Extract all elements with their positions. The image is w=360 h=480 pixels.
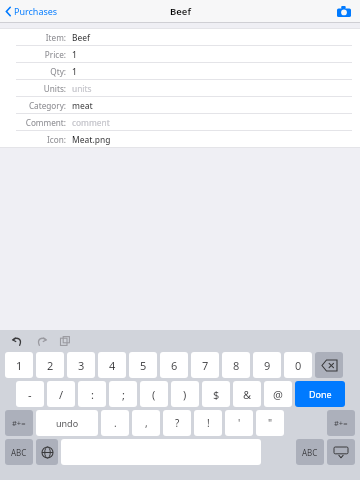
staticText: units: [72, 83, 92, 94]
staticText: 4: [109, 358, 116, 373]
staticText: ABC: [302, 447, 318, 458]
button[interactable]: Redo: [32, 332, 50, 350]
staticText: /: [59, 387, 64, 402]
staticText: Qty:: [16, 66, 66, 77]
staticText: &: [243, 387, 252, 402]
staticText: ': [238, 416, 241, 430]
staticText: 6: [171, 358, 178, 373]
button[interactable]: #+=: [327, 410, 355, 436]
button[interactable]: 7: [191, 352, 219, 378]
button[interactable]: key: [315, 352, 343, 378]
staticText: Price:: [16, 49, 66, 60]
button[interactable]: Camera: [336, 3, 352, 19]
button[interactable]: !: [194, 410, 222, 436]
button[interactable]: 4: [98, 352, 126, 378]
button[interactable]: 2: [36, 352, 64, 378]
button[interactable]: ABC: [296, 439, 324, 465]
staticText: 5: [140, 358, 147, 373]
staticText: ;: [122, 387, 125, 402]
staticText: Icon:: [16, 134, 66, 145]
button[interactable]: 1: [5, 352, 33, 378]
staticText: 1: [72, 49, 77, 60]
staticText: Comment:: [16, 117, 66, 128]
button[interactable]: 6: [160, 352, 188, 378]
button[interactable]: :: [78, 381, 106, 407]
staticText: comment: [72, 117, 110, 128]
button[interactable]: @: [264, 381, 292, 407]
button[interactable]: key: [327, 439, 355, 465]
staticText: !: [207, 416, 210, 430]
staticText: 7: [202, 358, 209, 373]
button[interactable]: ,: [132, 410, 160, 436]
staticText: ?: [175, 416, 180, 430]
button[interactable]: 9: [253, 352, 281, 378]
button[interactable]: 3: [67, 352, 95, 378]
button[interactable]: undo: [36, 410, 98, 436]
button[interactable]: 8: [222, 352, 250, 378]
button[interactable]: (: [140, 381, 168, 407]
staticText: -: [28, 387, 32, 402]
staticText: Category:: [16, 100, 66, 111]
staticText: 9: [264, 358, 271, 373]
button[interactable]: ": [256, 410, 284, 436]
staticText: meat: [72, 100, 93, 111]
button[interactable]: Undo: [8, 332, 26, 350]
staticText: ): [183, 387, 187, 402]
staticText: 0: [295, 358, 302, 373]
staticText: 1: [16, 358, 23, 373]
button[interactable]: .: [101, 410, 129, 436]
button[interactable]: #+=: [5, 410, 33, 436]
button[interactable]: $: [202, 381, 230, 407]
button[interactable]: 5: [129, 352, 157, 378]
staticText: ": [268, 416, 273, 430]
staticText: Beef: [72, 32, 91, 43]
button[interactable]: ?: [163, 410, 191, 436]
staticText: 3: [78, 358, 85, 373]
staticText: Units:: [16, 83, 66, 94]
staticText: 1: [72, 66, 77, 77]
button[interactable]: Done: [295, 381, 345, 407]
staticText: ABC: [11, 447, 27, 458]
button[interactable]: ): [171, 381, 199, 407]
staticText: #+=: [12, 418, 26, 428]
button[interactable]: key: [36, 439, 58, 465]
staticText: @: [273, 387, 283, 402]
staticText: 8: [233, 358, 240, 373]
staticText: Meat.png: [72, 134, 111, 145]
button[interactable]: ABC: [5, 439, 33, 465]
staticText: .: [114, 416, 117, 430]
button[interactable]: -: [16, 381, 44, 407]
button[interactable]: &: [233, 381, 261, 407]
button[interactable]: ;: [109, 381, 137, 407]
staticText: undo: [56, 417, 79, 429]
staticText: 2: [47, 358, 54, 373]
staticText: Done: [309, 388, 332, 400]
button[interactable]: Paste: [56, 332, 74, 350]
staticText: #+=: [334, 418, 348, 428]
staticText: $: [213, 387, 220, 402]
button[interactable]: ': [225, 410, 253, 436]
staticText: Purchases: [14, 5, 58, 17]
button[interactable]: Purchases: [5, 5, 58, 17]
staticText: :: [91, 387, 94, 402]
button[interactable]: /: [47, 381, 75, 407]
button[interactable]: 0: [284, 352, 312, 378]
staticText: (: [152, 387, 156, 402]
staticText: Beef: [170, 5, 191, 18]
staticText: ,: [145, 416, 148, 430]
staticText: Item:: [16, 32, 66, 43]
